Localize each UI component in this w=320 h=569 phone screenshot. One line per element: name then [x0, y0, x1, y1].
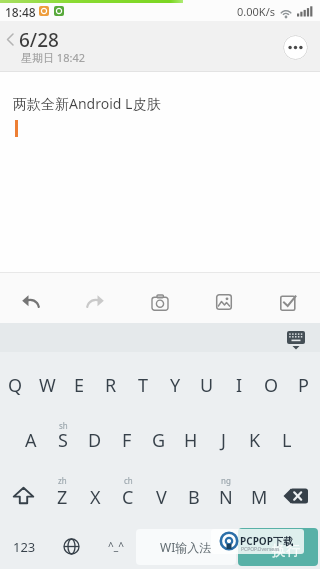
- staticText: I: [236, 373, 243, 398]
- button[interactable]: [85, 292, 107, 310]
- staticText: T: [138, 373, 149, 398]
- staticText: 两款全新Android L皮肤: [13, 94, 161, 113]
- staticText: V: [156, 485, 167, 510]
- staticText: C: [122, 485, 134, 510]
- button[interactable]: Q: [0, 365, 31, 405]
- button[interactable]: [283, 488, 309, 504]
- staticText: U: [200, 373, 214, 398]
- button[interactable]: 123: [2, 527, 46, 567]
- button[interactable]: O: [255, 365, 287, 405]
- staticText: P: [298, 373, 309, 398]
- staticText: PCPOP下载: [240, 534, 293, 548]
- staticText: 18:48: [5, 4, 36, 20]
- button[interactable]: J: [207, 420, 239, 460]
- button[interactable]: E: [63, 365, 95, 405]
- button[interactable]: [238, 528, 318, 566]
- staticText: ng: [221, 475, 231, 486]
- staticText: 星期日 18:42: [21, 50, 85, 65]
- button[interactable]: WI输入法: [136, 529, 236, 565]
- staticText: W: [39, 373, 56, 398]
- staticText: M: [251, 485, 268, 510]
- staticText: F: [122, 428, 132, 453]
- button[interactable]: X: [79, 477, 111, 517]
- staticText: sh: [59, 420, 68, 431]
- button[interactable]: [280, 294, 298, 311]
- button[interactable]: [150, 294, 170, 312]
- button[interactable]: [6, 33, 15, 46]
- staticText: L: [282, 428, 292, 453]
- button[interactable]: L: [271, 420, 303, 460]
- button[interactable]: [286, 329, 306, 350]
- button[interactable]: [13, 487, 34, 504]
- staticText: O: [264, 373, 279, 398]
- button[interactable]: P: [287, 365, 319, 405]
- staticText: H: [184, 428, 198, 453]
- button[interactable]: [283, 35, 308, 60]
- staticText: D: [88, 428, 102, 453]
- button[interactable]: B: [178, 477, 210, 517]
- staticText: WI输入法: [160, 539, 212, 555]
- staticText: Z: [57, 485, 68, 510]
- button[interactable]: [19, 292, 41, 310]
- staticText: A: [25, 428, 37, 453]
- button[interactable]: F: [111, 420, 143, 460]
- button[interactable]: Z: [46, 477, 78, 517]
- staticText: PCPOP.Overseas: [241, 546, 280, 553]
- staticText: ch: [124, 475, 133, 486]
- button[interactable]: [63, 538, 80, 555]
- button[interactable]: I: [223, 365, 255, 405]
- button[interactable]: S: [47, 420, 79, 460]
- button[interactable]: ^_^: [99, 535, 133, 557]
- staticText: K: [249, 428, 261, 453]
- staticText: B: [188, 485, 200, 510]
- staticText: Q: [8, 373, 23, 398]
- staticText: N: [219, 485, 233, 510]
- staticText: J: [221, 428, 226, 453]
- button[interactable]: W: [31, 365, 63, 405]
- staticText: ^_^: [108, 539, 124, 553]
- staticText: 123: [13, 538, 36, 556]
- staticText: G: [152, 428, 166, 453]
- button[interactable]: C: [112, 477, 144, 517]
- staticText: E: [74, 373, 85, 398]
- button[interactable]: G: [143, 420, 175, 460]
- button[interactable]: D: [79, 420, 111, 460]
- staticText: 6/28: [19, 27, 59, 53]
- button[interactable]: U: [191, 365, 223, 405]
- button[interactable]: V: [145, 477, 177, 517]
- button[interactable]: T: [127, 365, 159, 405]
- button[interactable]: N: [210, 477, 242, 517]
- staticText: R: [105, 373, 117, 398]
- staticText: S: [58, 428, 68, 453]
- button[interactable]: H: [175, 420, 207, 460]
- button[interactable]: [216, 294, 232, 310]
- staticText: Y: [170, 373, 181, 398]
- button[interactable]: A: [15, 420, 47, 460]
- staticText: X: [90, 485, 101, 510]
- staticText: 换行: [272, 542, 300, 560]
- button[interactable]: R: [95, 365, 127, 405]
- button[interactable]: M: [243, 477, 275, 517]
- button[interactable]: Y: [159, 365, 191, 405]
- staticText: zh: [58, 475, 67, 486]
- button[interactable]: K: [239, 420, 271, 460]
- staticText: 0.00K/s: [237, 4, 275, 19]
